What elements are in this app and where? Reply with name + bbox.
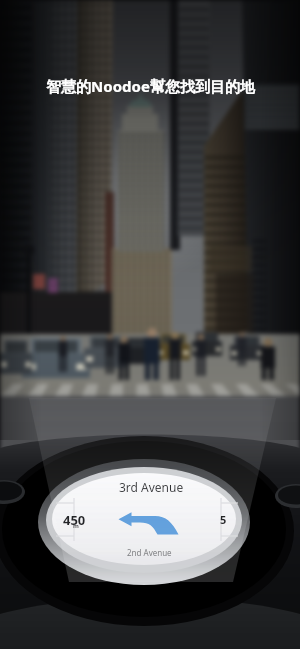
- staticText: m: [73, 522, 79, 530]
- staticText: 5: [220, 512, 227, 527]
- staticText: 450: [63, 511, 86, 529]
- staticText: 3rd Avenue: [119, 479, 184, 495]
- staticText: 2nd Avenue: [127, 547, 172, 558]
- staticText: 智慧的Noodoe幫您找到目的地: [46, 76, 255, 96]
